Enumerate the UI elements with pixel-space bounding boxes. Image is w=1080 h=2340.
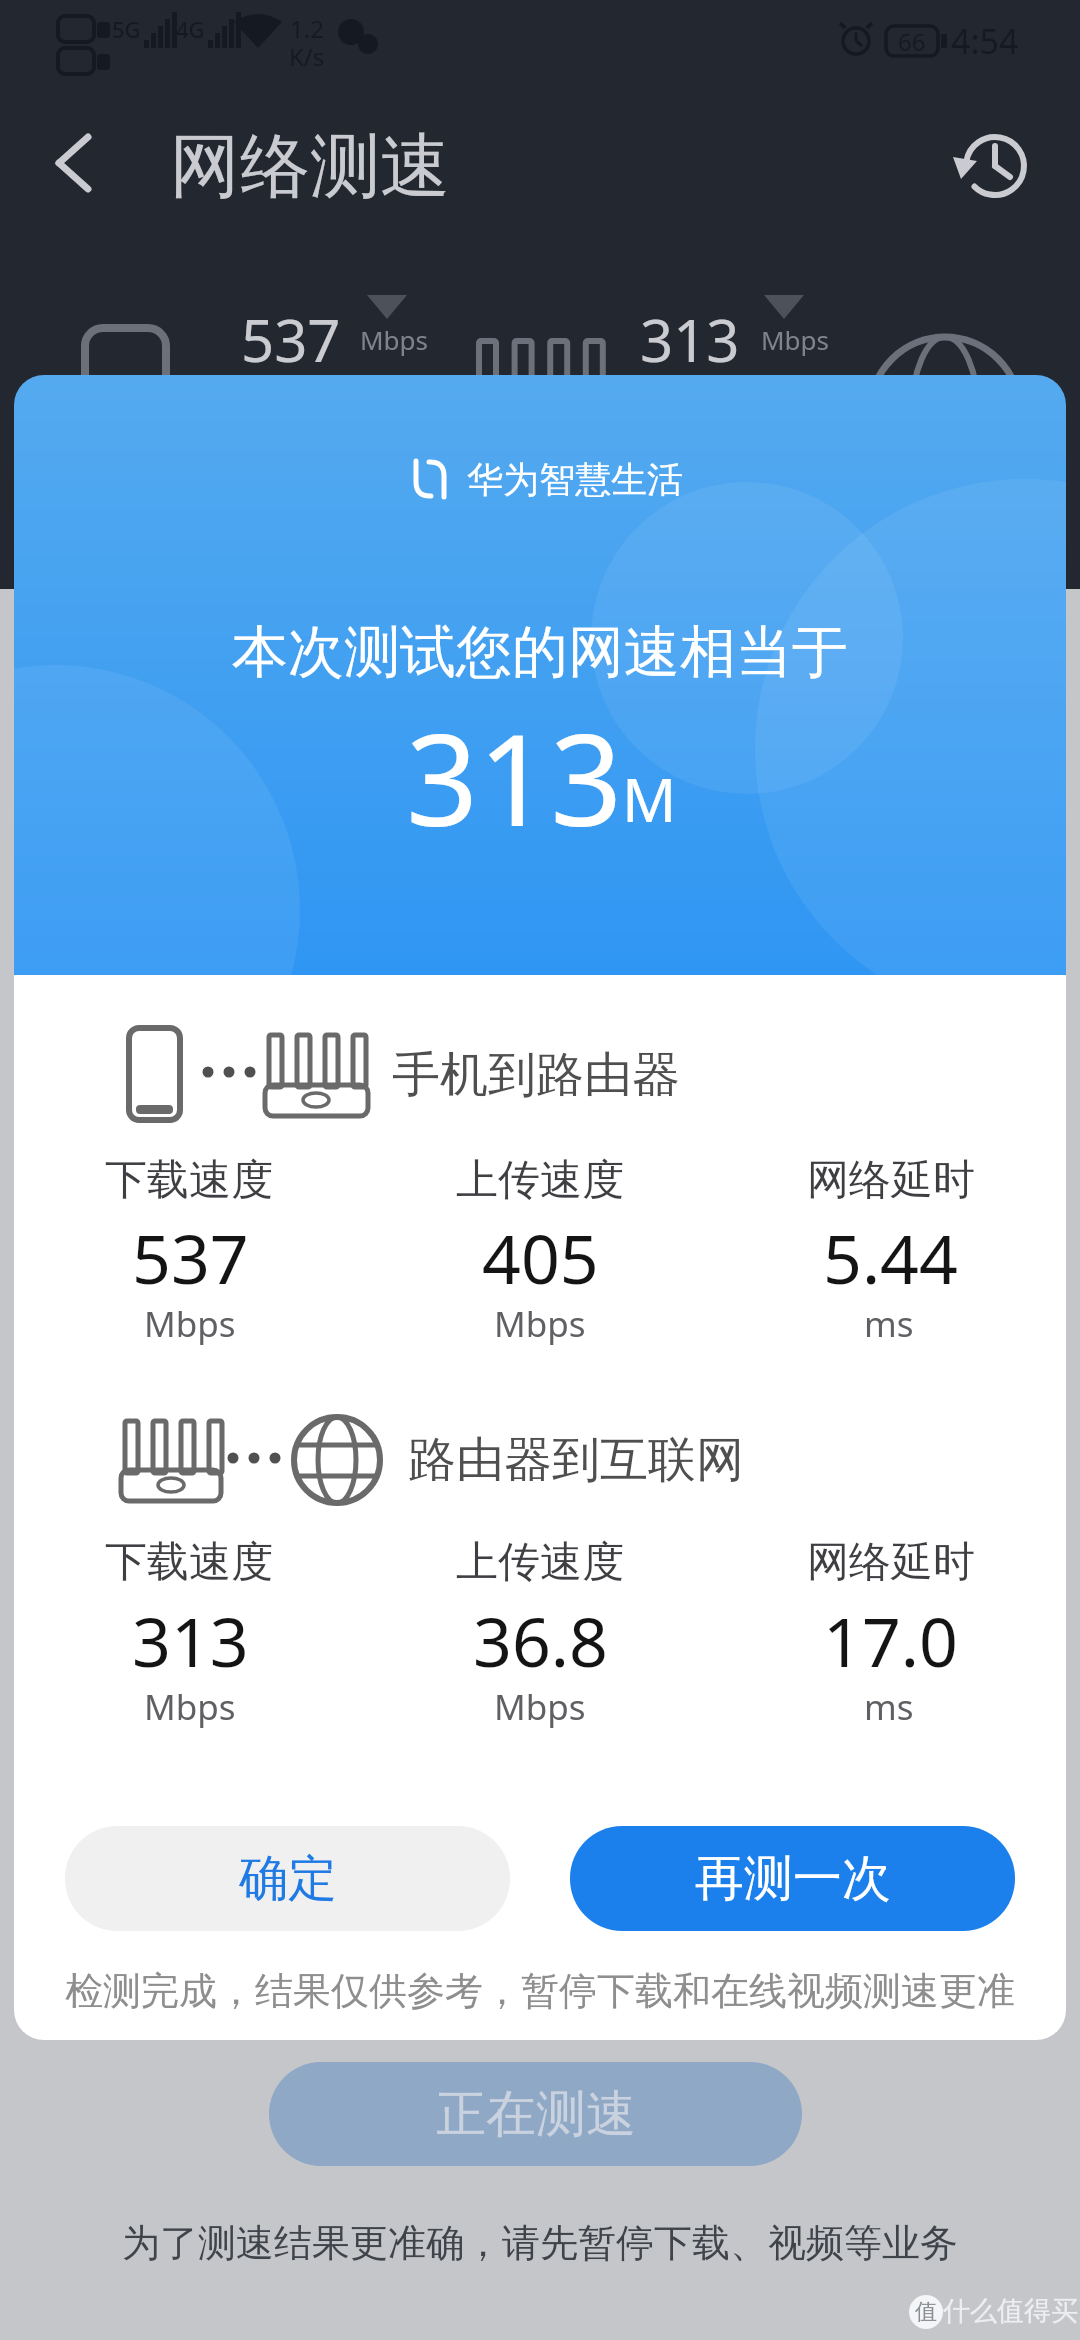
- staticText: Mbps: [761, 322, 830, 357]
- staticText: 313: [132, 1594, 249, 1687]
- staticText: 405: [482, 1211, 599, 1304]
- staticText: 正在测速: [436, 2083, 636, 2146]
- staticText: ms: [864, 1683, 914, 1731]
- staticText: 1.2: [290, 12, 324, 45]
- staticText: 36.8: [473, 1594, 608, 1687]
- staticText: 华为智慧生活: [467, 457, 683, 502]
- button[interactable]: [30, 130, 120, 204]
- staticText: 手机到路由器: [392, 1045, 680, 1105]
- staticText: 为了测速结果更准确，请先暂停下载、视频等业务: [122, 2219, 958, 2267]
- staticText: Mbps: [144, 1300, 236, 1348]
- staticText: 537: [241, 300, 341, 379]
- staticText: 上传速度: [456, 1536, 624, 1589]
- staticText: 537: [132, 1211, 249, 1304]
- staticText: 上传速度: [456, 1154, 624, 1207]
- staticText: 路由器到互联网: [408, 1430, 744, 1490]
- staticText: 17.0: [823, 1594, 958, 1687]
- staticText: Mbps: [360, 322, 429, 357]
- staticText: Mbps: [494, 1683, 586, 1731]
- staticText: 下载速度: [105, 1154, 273, 1207]
- staticText: 5G: [112, 14, 141, 44]
- staticText: 什么值得买: [943, 2294, 1078, 2328]
- staticText: 4:54: [951, 18, 1019, 64]
- button[interactable]: 正在测速: [269, 2062, 802, 2166]
- button[interactable]: 再测一次: [570, 1826, 1015, 1931]
- staticText: 检测完成，结果仅供参考，暂停下载和在线视频测速更准: [65, 1967, 1015, 2015]
- staticText: K/s: [289, 40, 325, 73]
- staticText: 313: [640, 300, 740, 379]
- button[interactable]: [960, 130, 1034, 204]
- staticText: M: [622, 758, 677, 840]
- staticText: 5.44: [823, 1211, 958, 1304]
- staticText: 下载速度: [105, 1536, 273, 1589]
- staticText: 本次测试您的网速相当于: [232, 617, 848, 688]
- staticText: 网络延时: [807, 1154, 975, 1207]
- staticText: 确定: [239, 1848, 337, 1910]
- staticText: 网络测速: [170, 123, 450, 211]
- staticText: Mbps: [494, 1300, 586, 1348]
- staticText: Mbps: [144, 1683, 236, 1731]
- button[interactable]: 确定: [65, 1826, 510, 1931]
- staticText: 再测一次: [695, 1848, 891, 1910]
- staticText: 66: [898, 25, 926, 58]
- staticText: ms: [864, 1300, 914, 1348]
- staticText: 网络延时: [807, 1536, 975, 1589]
- staticText: 值: [915, 2298, 937, 2326]
- staticText: 313: [406, 691, 623, 863]
- staticText: 4G: [176, 14, 205, 44]
